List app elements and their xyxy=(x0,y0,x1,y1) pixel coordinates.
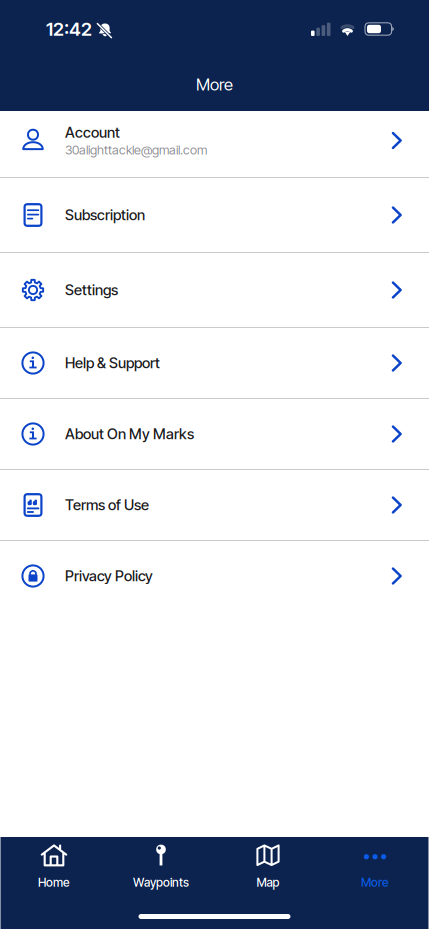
staticText: Account xyxy=(65,123,120,141)
button[interactable]: Subscription xyxy=(0,178,429,253)
button[interactable]: Map xyxy=(214,841,321,893)
staticText: More xyxy=(196,74,233,95)
staticText: More xyxy=(361,875,389,890)
staticText: 12:42 xyxy=(46,18,92,40)
staticText: Settings xyxy=(65,281,118,299)
button[interactable]: Account xyxy=(0,111,429,178)
staticText: Help & Support xyxy=(65,354,160,372)
button[interactable]: Privacy Policy xyxy=(0,541,429,612)
staticText: Subscription xyxy=(65,206,145,224)
button[interactable]: Help & Support xyxy=(0,328,429,399)
staticText: 30alighttackle@gmail.com xyxy=(65,142,207,157)
staticText: Waypoints xyxy=(133,875,189,890)
button[interactable]: Waypoints xyxy=(107,841,214,893)
staticText: Home xyxy=(38,875,70,890)
staticText: About On My Marks xyxy=(65,425,194,443)
button[interactable]: More xyxy=(321,841,428,893)
staticText: Terms of Use xyxy=(65,496,149,514)
button[interactable]: Settings xyxy=(0,253,429,328)
button[interactable]: Home xyxy=(0,841,107,893)
staticText: Map xyxy=(256,875,279,890)
button[interactable]: Terms of Use xyxy=(0,470,429,541)
button[interactable]: About On My Marks xyxy=(0,399,429,470)
staticText: Privacy Policy xyxy=(65,567,153,585)
